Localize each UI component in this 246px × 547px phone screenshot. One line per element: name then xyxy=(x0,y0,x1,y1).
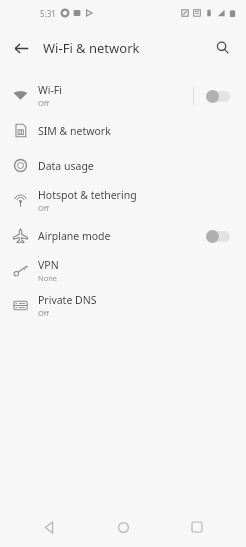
button[interactable]: Back xyxy=(29,507,69,547)
button[interactable]: Airplane mode xyxy=(0,218,246,253)
button[interactable]: Recents xyxy=(177,507,217,547)
staticText: Private DNS xyxy=(38,293,97,307)
button[interactable]: Back xyxy=(8,35,34,61)
staticText: Off xyxy=(38,98,50,108)
button[interactable]: VPN xyxy=(0,253,246,288)
staticText: Off xyxy=(38,203,50,213)
button[interactable]: Wi-Fi xyxy=(0,78,246,113)
button[interactable]: SIM & network xyxy=(0,113,246,148)
staticText: Hotspot & tethering xyxy=(38,188,137,202)
staticText: Off xyxy=(38,308,50,318)
button[interactable]: Search xyxy=(210,35,236,61)
staticText: Data usage xyxy=(38,159,94,173)
staticText: Airplane mode xyxy=(38,229,111,243)
button[interactable]: Private DNS xyxy=(0,288,246,323)
button[interactable]: Home xyxy=(103,507,143,547)
staticText: 5:31 xyxy=(40,8,56,19)
staticText: VPN xyxy=(38,258,59,272)
button[interactable]: Data usage xyxy=(0,148,246,183)
button[interactable] xyxy=(206,86,234,106)
button[interactable]: Hotspot & tethering xyxy=(0,183,246,218)
staticText: Wi-Fi & network xyxy=(43,39,140,57)
staticText: None xyxy=(38,273,58,283)
staticText: Wi-Fi xyxy=(38,83,63,97)
button[interactable] xyxy=(206,226,234,246)
staticText: SIM & network xyxy=(38,124,111,138)
